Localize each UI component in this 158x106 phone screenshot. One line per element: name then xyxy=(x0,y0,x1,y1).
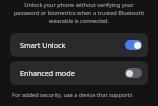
staticText: For added security, use a device that su… xyxy=(12,91,150,99)
staticText: Smart Unlock xyxy=(20,40,125,50)
staticText: Unlock your phone without verifying your… xyxy=(11,1,147,25)
button[interactable]: Smart Unlock toggle xyxy=(125,40,142,50)
button[interactable]: Smart Unlock xyxy=(10,33,148,57)
button[interactable]: Enhanced mode xyxy=(10,61,148,85)
button[interactable]: Enhanced mode toggle xyxy=(125,68,142,78)
staticText: Enhanced mode xyxy=(20,68,125,78)
